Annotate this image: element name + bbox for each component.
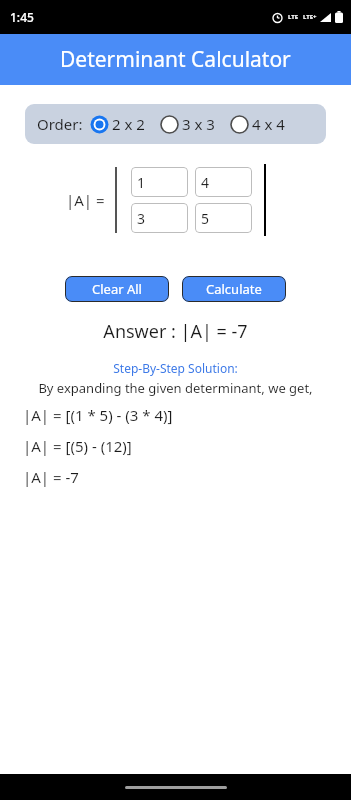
button[interactable]: 4 x 4 — [228, 112, 287, 136]
staticText: Step-By-Step Solution: — [0, 360, 351, 376]
staticText: Determinant Calculator — [60, 45, 291, 74]
button[interactable]: 5 — [195, 203, 252, 233]
staticText: Order: — [37, 114, 83, 134]
staticText: LTE+ — [303, 13, 317, 21]
staticText: 3 x 3 — [182, 114, 215, 134]
button[interactable]: 3 x 3 — [158, 112, 217, 136]
button[interactable]: 1 — [131, 167, 188, 197]
staticText: Calculate — [206, 280, 262, 298]
staticText: 4 x 4 — [252, 114, 285, 134]
staticText: 1:45 — [10, 9, 34, 25]
button[interactable]: Calculate — [182, 276, 286, 302]
button[interactable]: 4 — [195, 167, 252, 197]
staticText: 1 — [137, 173, 146, 192]
button[interactable]: 3 — [131, 203, 188, 233]
staticText: 3 — [137, 209, 146, 228]
staticText: 5 — [201, 209, 210, 228]
staticText: 2 x 2 — [112, 114, 145, 134]
staticText: |A| = — [66, 190, 105, 210]
staticText: LTE — [288, 13, 299, 21]
staticText: |A| = [(1 * 5) - (3 * 4)] — [23, 405, 173, 425]
staticText: Clear All — [92, 280, 142, 298]
staticText: 4 — [201, 173, 210, 192]
staticText: |A| = [(5) - (12)] — [23, 436, 132, 456]
button[interactable]: Clear All — [65, 276, 169, 302]
staticText: By expanding the given determinant, we g… — [0, 379, 351, 397]
button[interactable]: 2 x 2 — [88, 112, 147, 136]
staticText: Answer : |A| = -7 — [0, 319, 351, 344]
staticText: |A| = -7 — [23, 467, 79, 487]
